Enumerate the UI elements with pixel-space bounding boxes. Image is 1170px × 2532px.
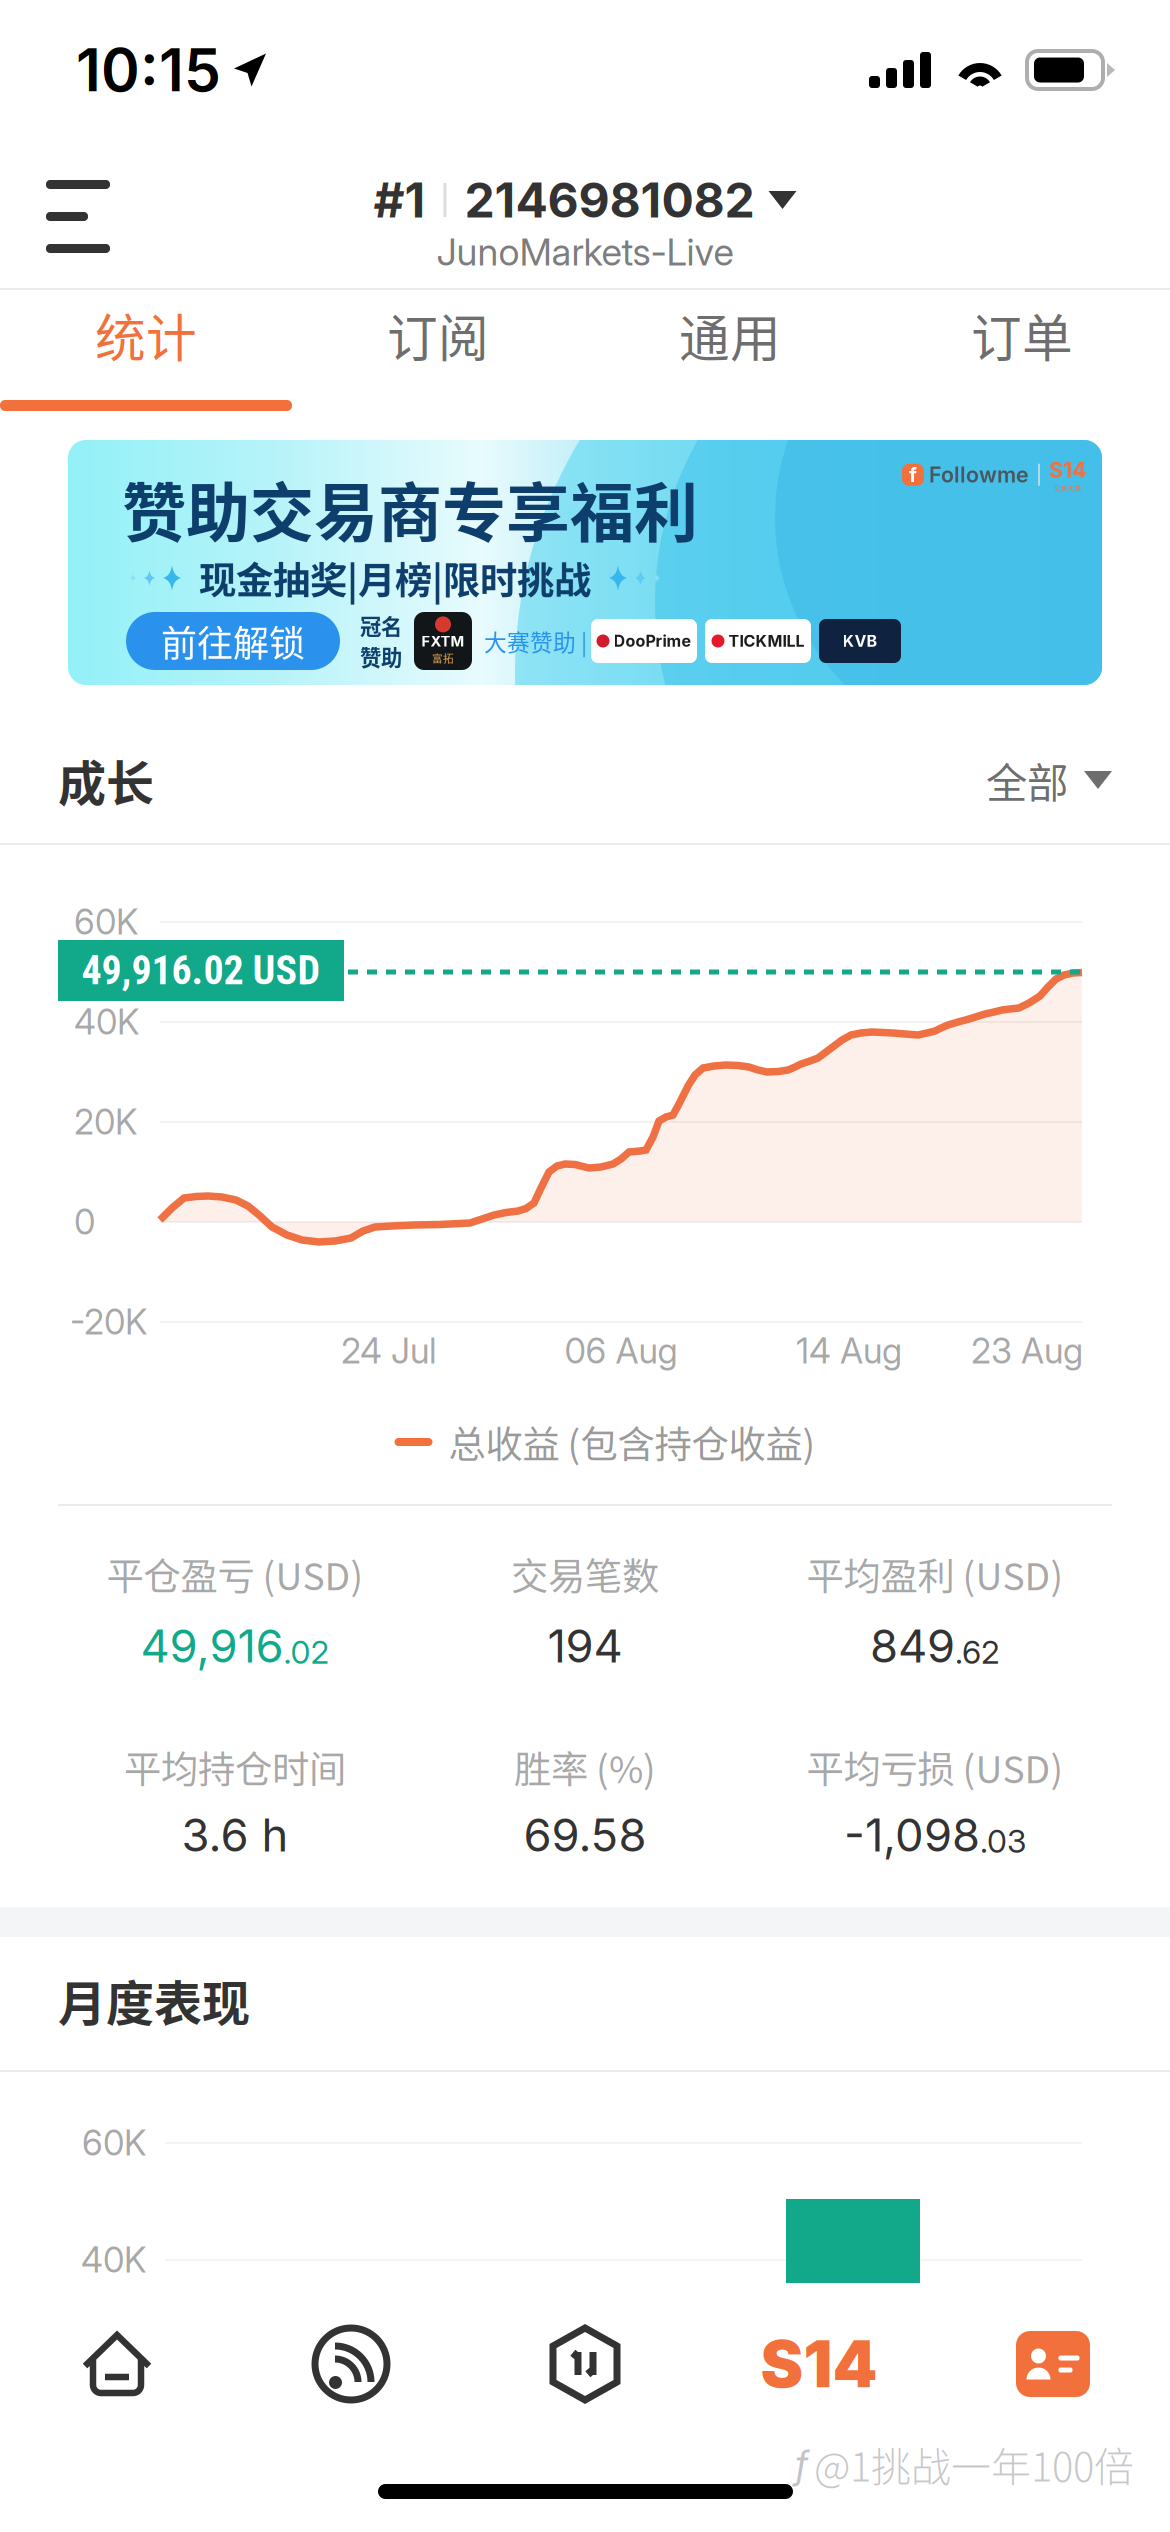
staticText: 10:15 [76,34,221,105]
button[interactable]: 全部 [986,750,1112,810]
staticText: 平均盈利 (USD) [806,1547,1063,1601]
staticText: Followme [929,462,1029,488]
staticText: S14 [1049,457,1086,483]
staticText: 富拓 [432,650,454,666]
staticText: 849 [870,1619,955,1673]
staticText: FXTM [421,632,464,650]
button[interactable]: Menu [0,140,170,288]
staticText: 交易笔数 [511,1547,659,1601]
staticText: 月度表现 [58,1965,250,2035]
staticText: 现金抽奖|月榜|限时挑战 [199,551,591,605]
staticText: 3.6 h [181,1808,288,1862]
staticText: KVB [842,631,877,651]
staticText: 40K [81,2239,146,2281]
staticText: 大赛赞助 | [484,625,587,657]
staticText: #1 [373,171,425,229]
button[interactable]: Signals [234,2299,468,2429]
staticText: 平均亏损 (USD) [806,1740,1063,1794]
staticText: 全部 [986,750,1068,810]
staticText: 胜率 (%) [514,1740,656,1794]
staticText: S14 [760,2325,877,2403]
staticText: 49,916.02 USD [81,947,320,994]
staticText: 23 Aug [971,1330,1083,1372]
button[interactable]: 订阅 [292,290,584,417]
button[interactable]: 统计 [0,290,292,417]
staticText: 订阅 [387,298,489,372]
staticText: DooPrime [613,631,691,651]
button[interactable]: Home [0,2299,234,2429]
staticText: 交易大赛 [1053,483,1081,492]
staticText: 2146981082 [464,171,754,229]
staticText: 60K [74,901,138,943]
button[interactable]: S14 Contest [702,2299,936,2429]
staticText: 14 Aug [796,1330,902,1372]
button[interactable]: 通用 [584,290,876,417]
staticText: .62 [955,1633,1000,1671]
button[interactable]: Trade [468,2299,702,2429]
staticText: f [909,463,917,487]
staticText: 0 [74,1201,95,1243]
staticText: 平均持仓时间 [124,1740,346,1794]
staticText: 06 Aug [564,1330,677,1372]
staticText: 69.58 [523,1808,646,1862]
button[interactable]: 订单 [876,290,1168,417]
staticText: 前往解锁 [161,615,305,667]
staticText: 194 [547,1619,622,1673]
staticText: @1挑战一年100倍 [814,2435,1134,2493]
button[interactable]: Profile [936,2299,1170,2429]
staticText: .03 [980,1822,1026,1860]
staticText: 订单 [971,298,1073,372]
staticText: 40K [74,1001,139,1043]
staticText: 60K [82,2122,146,2164]
staticText: 20K [74,1101,137,1143]
staticText: 成长 [58,745,154,815]
staticText: 赞助交易商专享福利 [122,462,698,554]
staticText: JunoMarkets-Live [436,229,733,275]
staticText: .02 [283,1633,329,1671]
staticText: 总收益 (包含持仓收益) [448,1415,815,1469]
button[interactable]: S14 [68,440,1102,685]
staticText: 24 Jul [341,1330,437,1372]
staticText: -1,098 [844,1808,980,1862]
staticText: 平仓盈亏 (USD) [106,1547,363,1601]
staticText: 49,916 [140,1619,283,1673]
staticText: 统计 [95,298,197,372]
staticText: -20K [70,1301,147,1343]
staticText: 冠名 赞助 [360,610,402,672]
staticText: TICKMILL [728,631,804,651]
staticText: f [795,2440,808,2488]
staticText: 通用 [679,298,781,372]
